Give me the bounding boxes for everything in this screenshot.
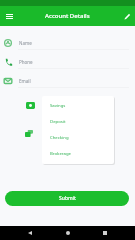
staticText: Savings [50, 102, 66, 108]
staticText: Name [19, 40, 32, 46]
button[interactable]: Savings [42, 97, 114, 113]
button[interactable]: Deposit [42, 113, 114, 129]
button[interactable]: Brokerage [42, 145, 114, 161]
staticText: Brokerage [50, 150, 71, 156]
staticText: Account Details [45, 12, 90, 20]
button[interactable]: Back [24, 226, 36, 240]
button[interactable]: Name [0, 33, 135, 52]
staticText: Checking [50, 134, 69, 140]
staticText: Deposit [50, 118, 66, 124]
button[interactable]: Menu [2, 9, 16, 23]
button[interactable]: Amount [26, 102, 35, 109]
button[interactable]: Phone [0, 52, 135, 71]
button[interactable]: Submit [5, 191, 129, 206]
button[interactable]: Checking [42, 129, 114, 145]
staticText: Email [19, 78, 31, 84]
button[interactable]: Edit [120, 9, 134, 23]
button[interactable]: Email [0, 71, 135, 90]
button[interactable]: Recents [99, 226, 111, 240]
staticText: Submit [59, 195, 76, 202]
button[interactable]: Home [62, 226, 74, 240]
staticText: Phone [19, 59, 33, 65]
button[interactable]: Account type [25, 130, 33, 137]
